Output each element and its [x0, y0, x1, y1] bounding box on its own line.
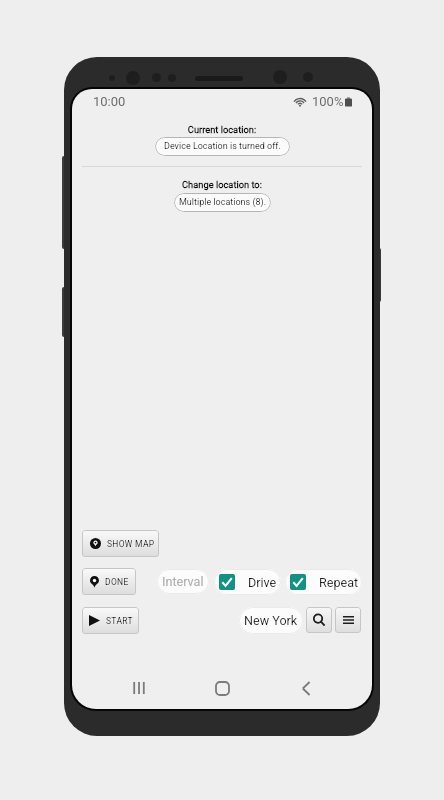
staticText: Repeat — [319, 575, 359, 590]
button[interactable]: Multiple locations (8). — [174, 193, 271, 212]
button[interactable]: New York — [239, 607, 303, 634]
button[interactable]: Menu — [335, 607, 361, 633]
button[interactable]: Recents — [133, 682, 145, 694]
button[interactable]: Home — [216, 682, 229, 695]
staticText: START — [106, 616, 133, 626]
button[interactable]: Device Location is turned off. — [155, 137, 290, 156]
staticText: Device Location is turned off. — [164, 141, 281, 152]
staticText: Drive — [248, 575, 277, 590]
button[interactable]: Back — [302, 682, 310, 695]
staticText: New York — [244, 613, 298, 628]
button[interactable]: DONE — [82, 568, 136, 595]
staticText: Interval — [162, 574, 204, 589]
button[interactable]: Search — [306, 607, 332, 633]
staticText: SHOW MAP — [107, 539, 155, 549]
button[interactable]: Repeat — [285, 569, 362, 595]
staticText: DONE — [105, 577, 129, 587]
staticText: 10:00 — [93, 94, 126, 109]
staticText: Multiple locations (8). — [179, 197, 267, 208]
button[interactable]: START — [82, 607, 139, 634]
staticText: Current location: — [72, 124, 372, 135]
staticText: 100% — [312, 94, 344, 109]
button[interactable]: Interval — [157, 569, 209, 594]
button[interactable]: SHOW MAP — [82, 530, 159, 557]
button[interactable]: Drive — [214, 569, 281, 595]
staticText: Change location to: — [72, 179, 372, 190]
